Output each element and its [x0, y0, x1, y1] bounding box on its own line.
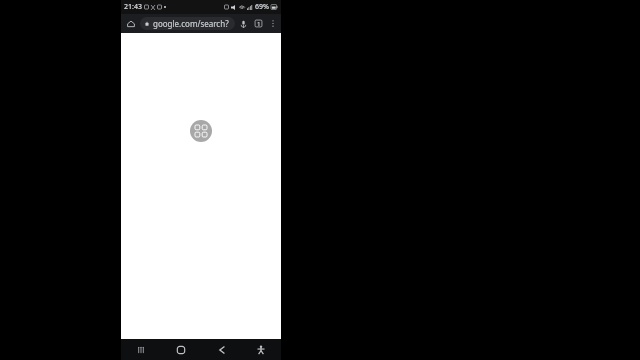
button[interactable]: Tabs	[251, 16, 266, 31]
button[interactable]: Recent apps	[121, 339, 161, 360]
button[interactable]: google.com/search?q=	[140, 17, 235, 30]
button[interactable]: Back	[201, 339, 241, 360]
button[interactable]: Apps	[190, 120, 212, 142]
staticText: 1	[257, 20, 261, 28]
button[interactable]: Home	[123, 16, 139, 32]
button[interactable]: More options	[266, 17, 279, 30]
button[interactable]: Home	[161, 339, 201, 360]
staticText: 69%	[255, 2, 269, 12]
staticText: 21:43	[124, 2, 142, 12]
staticText: google.com/search?q=	[153, 18, 232, 29]
button[interactable]: Accessibility	[241, 339, 281, 360]
button[interactable]: Voice search	[236, 16, 251, 31]
